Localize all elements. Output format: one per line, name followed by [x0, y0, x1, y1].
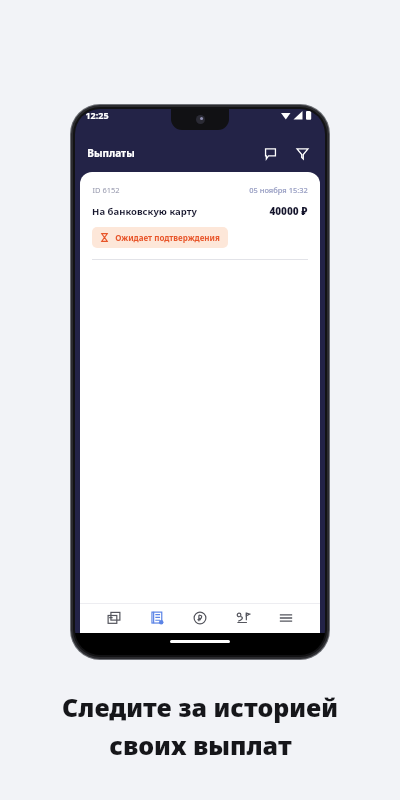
staticText: Ожидает подтверждения	[115, 232, 220, 243]
staticText: 40000 ₽	[269, 204, 308, 218]
staticText: своих выплат	[109, 728, 292, 762]
staticText: 12:25	[85, 109, 109, 121]
staticText: Выплаты	[87, 146, 135, 160]
button[interactable]: Chat	[257, 140, 283, 166]
button[interactable]: Payouts	[139, 603, 175, 633]
button[interactable]: Orders	[96, 603, 132, 633]
button[interactable]: Routes	[225, 603, 261, 633]
button[interactable]: Finance	[182, 603, 218, 633]
button[interactable]: Menu	[268, 603, 304, 633]
button[interactable]: Filter	[289, 140, 315, 166]
button[interactable]: ID 6152	[80, 185, 320, 260]
staticText: 05 ноября 15:32	[249, 185, 308, 195]
staticText: ID 6152	[92, 185, 120, 195]
staticText: Следите за историей	[62, 690, 338, 724]
staticText: На банковскую карту	[92, 205, 197, 218]
